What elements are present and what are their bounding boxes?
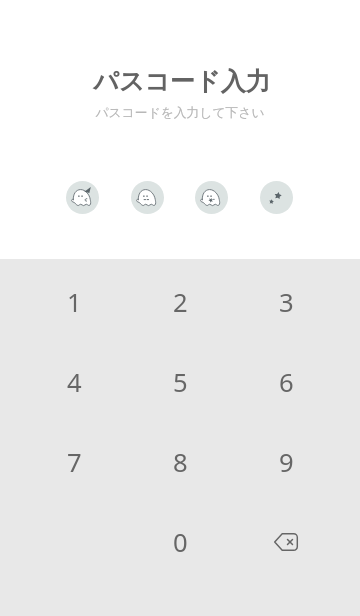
staticText: 5 <box>173 365 188 400</box>
button[interactable]: 9 <box>233 422 339 502</box>
button[interactable]: 2 <box>127 262 233 342</box>
button[interactable]: 7 <box>21 422 127 502</box>
button[interactable]: 1 <box>21 262 127 342</box>
button[interactable]: 5 <box>127 342 233 422</box>
button[interactable]: 0 <box>127 502 233 582</box>
button[interactable]: 6 <box>233 342 339 422</box>
staticText: 7 <box>67 445 82 480</box>
staticText: 1 <box>67 285 82 320</box>
staticText: 6 <box>279 365 294 400</box>
staticText: 2 <box>173 285 188 320</box>
staticText: 8 <box>173 445 188 480</box>
button[interactable]: 8 <box>127 422 233 502</box>
staticText: 3 <box>279 285 294 320</box>
button[interactable]: 4 <box>21 342 127 422</box>
staticText: 4 <box>67 365 82 400</box>
staticText: パスコードを入力して下さい <box>95 105 265 121</box>
button[interactable]: Backspace <box>233 502 339 582</box>
staticText: 0 <box>173 525 188 560</box>
button[interactable]: 3 <box>233 262 339 342</box>
staticText: 9 <box>279 445 294 480</box>
staticText: パスコード入力 <box>93 66 271 97</box>
